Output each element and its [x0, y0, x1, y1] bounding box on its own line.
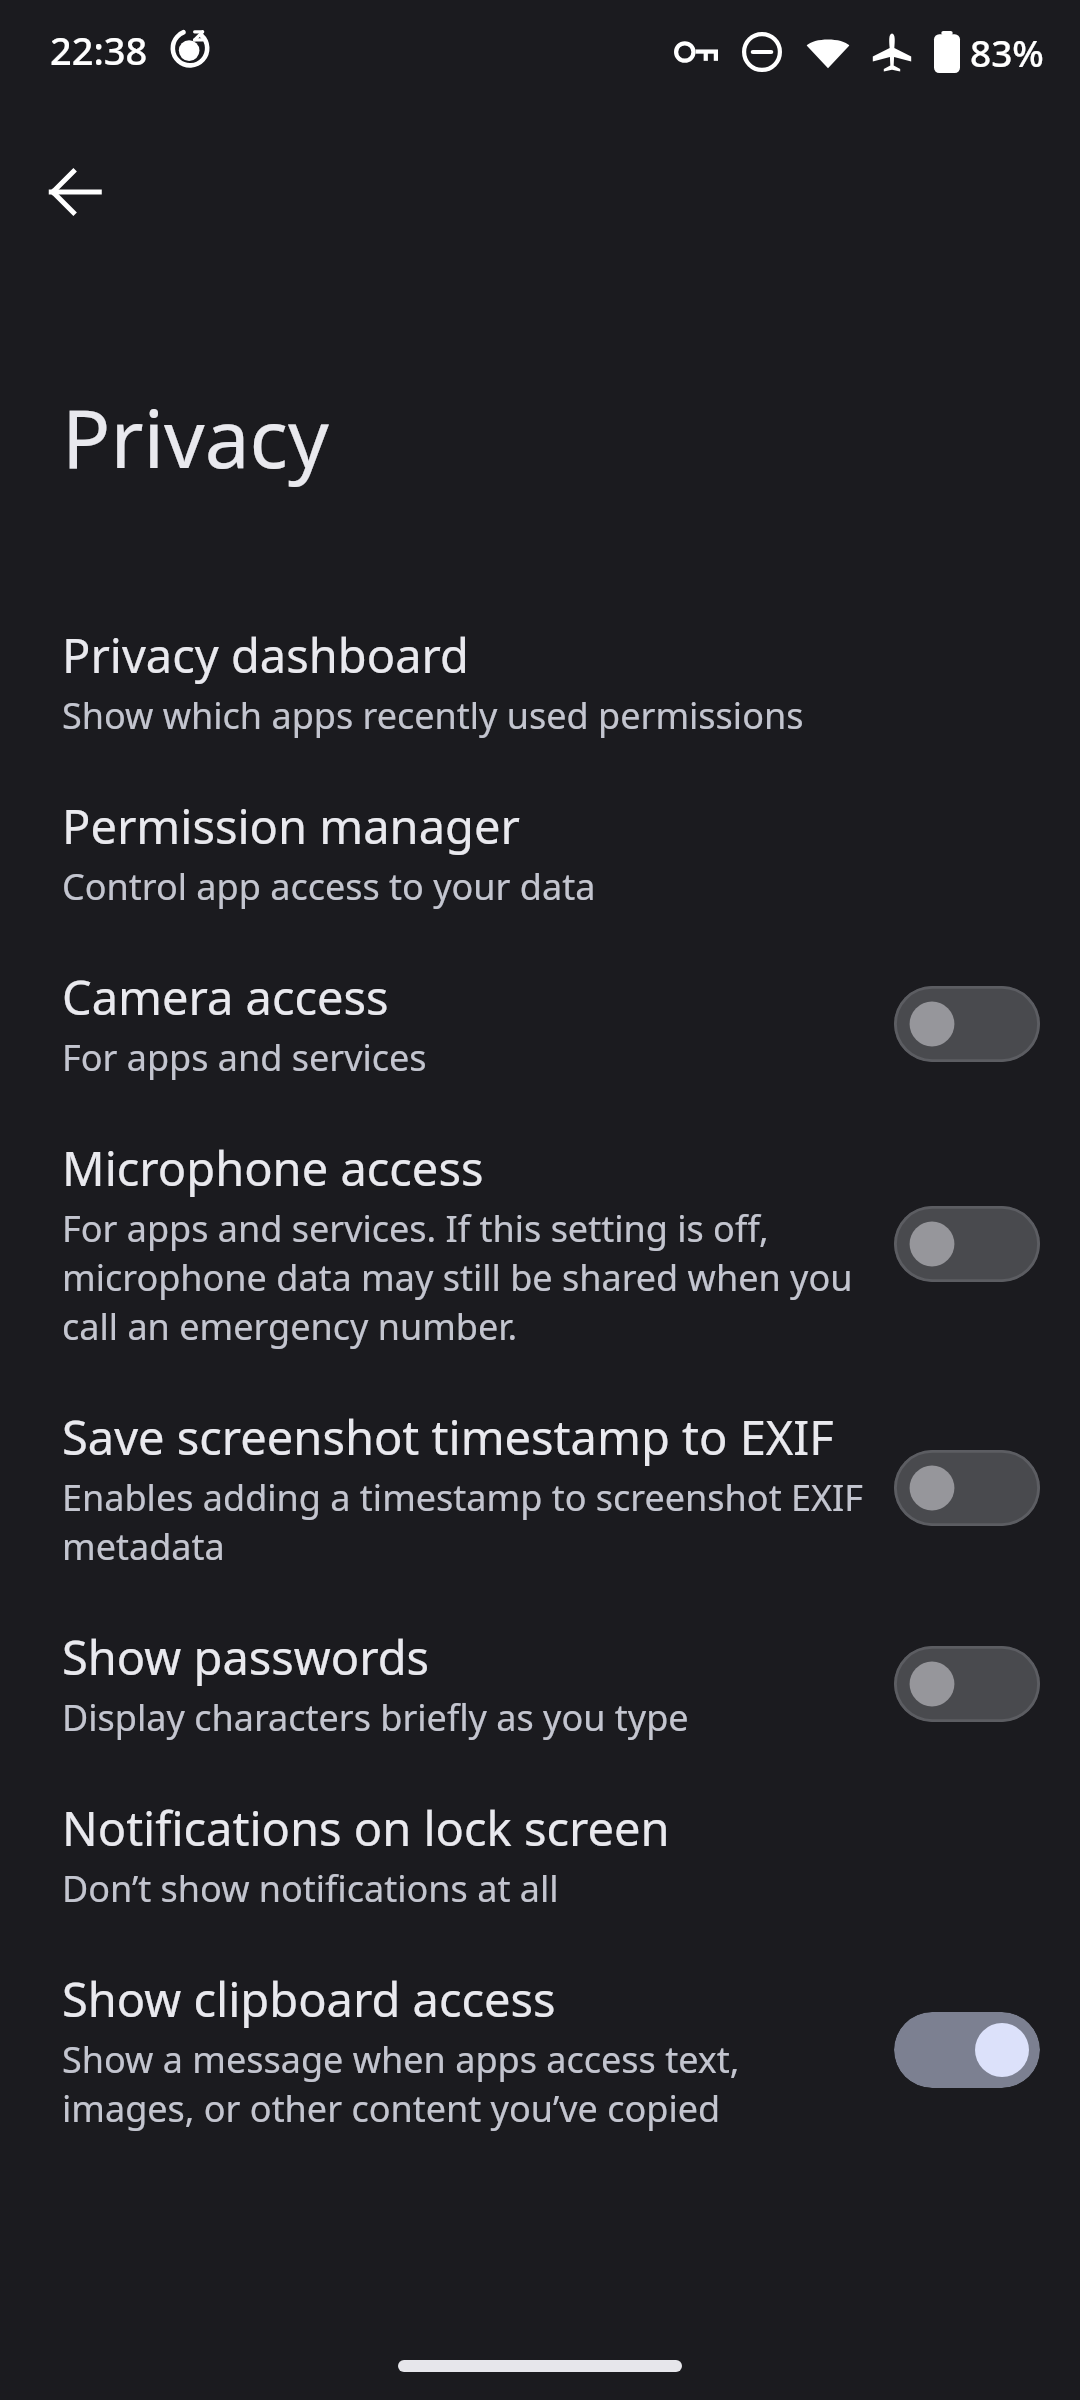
button[interactable]: Show passwords [0, 1599, 1080, 1770]
staticText: Show which apps recently used permission… [62, 691, 804, 740]
button[interactable]: Microphone access [0, 1110, 1080, 1379]
button[interactable]: Show clipboard access [0, 1941, 1080, 2161]
staticText: 83% [970, 27, 1044, 77]
staticText: For apps and services. If this setting i… [62, 1204, 868, 1351]
staticText: Notifications on lock screen [62, 1796, 670, 1860]
button[interactable]: Save screenshot timestamp to EXIF [0, 1379, 1080, 1599]
staticText: Microphone access [62, 1136, 484, 1200]
button[interactable]: Privacy dashboard [0, 597, 1080, 768]
staticText: Permission manager [62, 794, 520, 858]
staticText: Don’t show notifications at all [62, 1864, 559, 1913]
staticText: For apps and services [62, 1033, 427, 1082]
button[interactable]: Switch on [894, 2012, 1040, 2088]
staticText: 22:38 [50, 24, 148, 76]
staticText: Control app access to your data [62, 862, 596, 911]
staticText: Camera access [62, 965, 389, 1029]
button[interactable]: Switch off [894, 1646, 1040, 1722]
staticText: Show clipboard access [62, 1967, 556, 2031]
button[interactable]: Permission manager [0, 768, 1080, 939]
staticText: Display characters briefly as you type [62, 1693, 689, 1742]
button[interactable]: Camera access [0, 939, 1080, 1110]
staticText: Privacy [62, 382, 329, 491]
staticText: Show a message when apps access text, im… [62, 2035, 868, 2133]
staticText: Enables adding a timestamp to screenshot… [62, 1473, 868, 1571]
button[interactable]: Notifications on lock screen [0, 1770, 1080, 1941]
button[interactable]: Switch off [894, 986, 1040, 1062]
staticText: Show passwords [62, 1625, 430, 1689]
staticText: Privacy dashboard [62, 623, 469, 687]
button[interactable]: Switch off [894, 1450, 1040, 1526]
button[interactable]: Back [26, 143, 124, 241]
button[interactable]: Switch off [894, 1206, 1040, 1282]
staticText: Save screenshot timestamp to EXIF [62, 1405, 834, 1469]
